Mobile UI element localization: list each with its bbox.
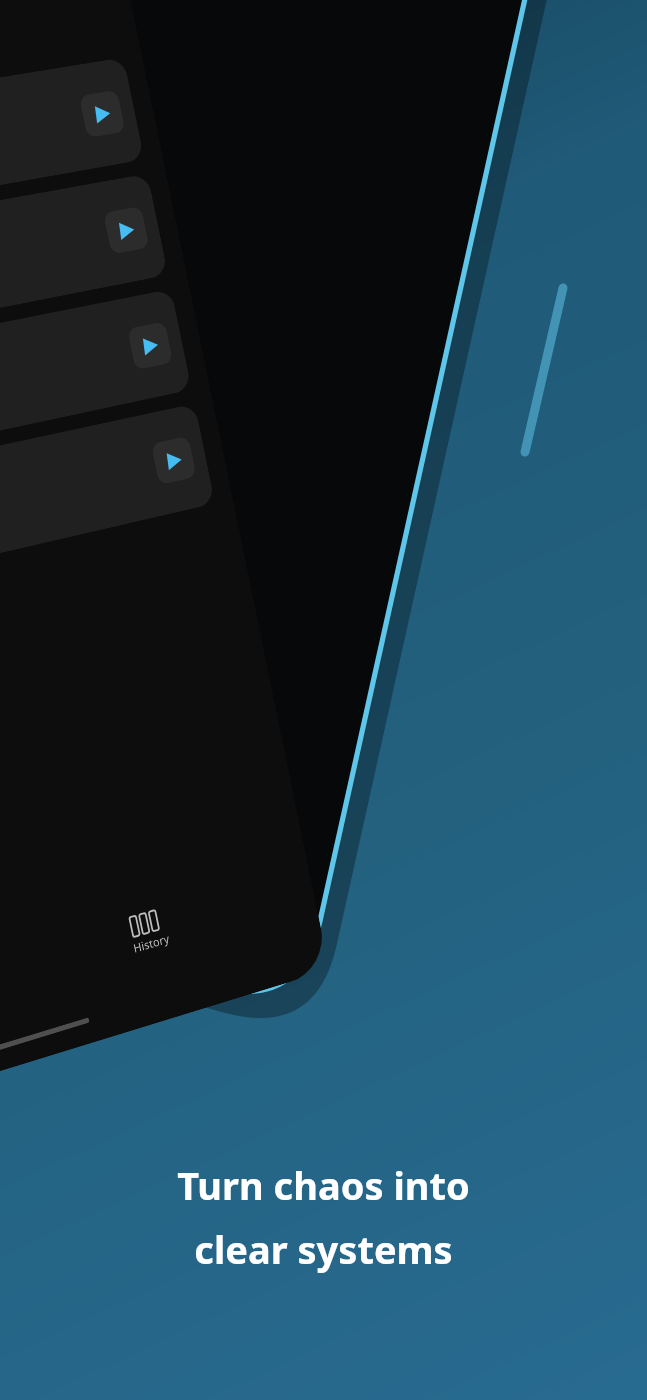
button[interactable]: Mind bbox=[0, 57, 144, 239]
button[interactable]: Play routine bbox=[79, 90, 126, 138]
button[interactable]: Body bbox=[0, 173, 168, 361]
button[interactable]: Play routine bbox=[127, 321, 173, 370]
staticText: clear systems bbox=[194, 1223, 453, 1275]
button[interactable]: Play routine bbox=[103, 206, 150, 255]
button[interactable]: Play routine bbox=[151, 436, 197, 485]
staticText: History bbox=[132, 930, 171, 956]
button[interactable]: History bbox=[127, 908, 171, 956]
button[interactable]: House & Prep bbox=[0, 289, 192, 483]
button[interactable]: Play routine bbox=[0, 403, 215, 604]
staticText: Turn chaos into bbox=[177, 1159, 470, 1211]
